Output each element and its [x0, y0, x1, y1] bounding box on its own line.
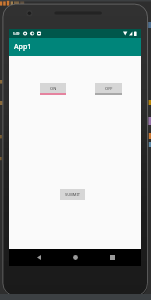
- button[interactable]: ON: [40, 83, 66, 95]
- button[interactable]: SUBMIT: [60, 189, 85, 200]
- staticText: OFF: [105, 86, 113, 91]
- button[interactable]: Recent apps: [103, 249, 121, 266]
- staticText: ON: [50, 86, 57, 91]
- staticText: SUBMIT: [65, 192, 81, 197]
- button[interactable]: Back: [30, 249, 48, 266]
- button[interactable]: OFF: [95, 83, 122, 95]
- button[interactable]: Home: [66, 249, 84, 266]
- staticText: App1: [14, 42, 32, 52]
- staticText: 5:39: [13, 32, 20, 36]
